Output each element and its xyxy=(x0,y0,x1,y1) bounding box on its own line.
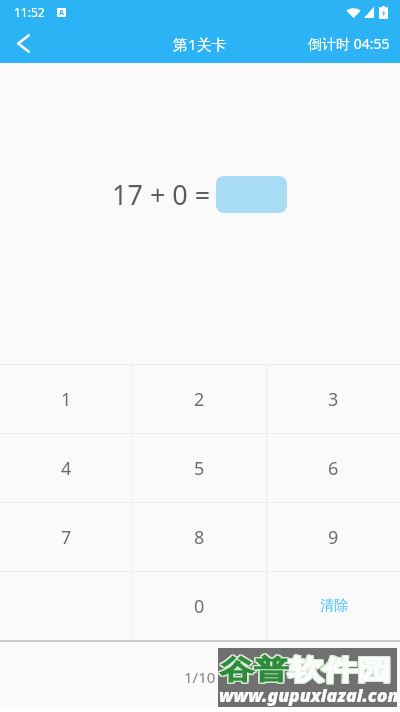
staticText: 谷普软件园 xyxy=(219,653,390,687)
staticText: 0 xyxy=(194,594,205,619)
staticText: 4 xyxy=(61,456,72,481)
staticText: 谷普软件园 xyxy=(221,654,392,688)
button[interactable]: 3 xyxy=(267,365,400,433)
staticText: 3 xyxy=(328,387,339,412)
staticText: 5 xyxy=(194,456,205,481)
button[interactable]: 6 xyxy=(267,434,400,502)
staticText: 9 xyxy=(328,525,339,550)
button[interactable]: 5 xyxy=(133,434,266,502)
button[interactable]: Answer field xyxy=(216,176,287,213)
staticText: 谷普软件园 xyxy=(220,652,391,686)
staticText: 谷普软件园 xyxy=(219,652,390,686)
staticText: 谷普软件园 xyxy=(221,653,392,687)
button[interactable]: 7 xyxy=(0,503,132,571)
button[interactable]: Back xyxy=(0,24,46,63)
staticText: 8 xyxy=(194,525,205,550)
button[interactable]: 清除 xyxy=(267,572,400,640)
button[interactable]: 8 xyxy=(133,503,266,571)
staticText: 倒计时 04:55 xyxy=(308,34,390,53)
button[interactable]: 9 xyxy=(267,503,400,571)
staticText: 1/10 xyxy=(184,667,216,687)
button[interactable]: 2 xyxy=(133,365,266,433)
staticText: 谷普软件园 xyxy=(220,654,391,688)
staticText: 6 xyxy=(328,456,339,481)
staticText: 11:52 xyxy=(14,4,45,20)
staticText: 谷普软件园 xyxy=(219,654,390,688)
staticText: 软件园 xyxy=(288,653,391,687)
staticText: 1 xyxy=(61,387,72,412)
staticText: 7 xyxy=(61,525,72,550)
staticText: 清除 xyxy=(320,597,348,615)
staticText: 17 + 0 = xyxy=(112,176,211,213)
staticText: 谷普软件园 xyxy=(221,652,392,686)
staticText: 谷普 xyxy=(220,653,288,687)
staticText: www.gupuxlazal.com xyxy=(219,684,400,707)
staticText: 第1关卡 xyxy=(173,34,227,54)
button[interactable]: 0 xyxy=(133,572,266,640)
staticText: A xyxy=(59,8,64,17)
staticText: 2 xyxy=(194,387,205,412)
button[interactable]: 1 xyxy=(0,365,132,433)
button[interactable]: 4 xyxy=(0,434,132,502)
